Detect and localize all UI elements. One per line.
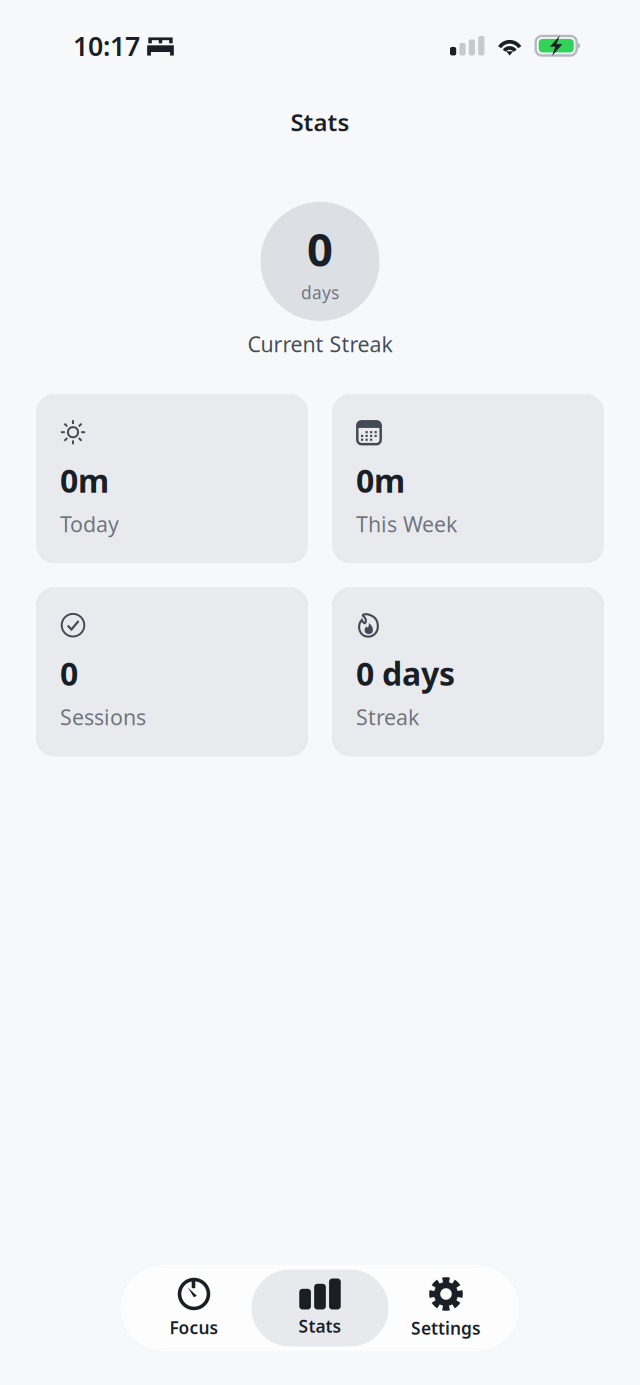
staticText: 0 bbox=[307, 219, 333, 279]
button[interactable]: 0m bbox=[332, 394, 604, 563]
staticText: 0m bbox=[60, 459, 109, 502]
button[interactable]: Focus bbox=[125, 1269, 262, 1346]
staticText: 10:17 bbox=[73, 28, 140, 63]
button[interactable]: 0 bbox=[36, 587, 308, 756]
staticText: Today bbox=[60, 510, 119, 538]
staticText: 0m bbox=[356, 459, 405, 502]
staticText: Sessions bbox=[60, 703, 146, 731]
staticText: Streak bbox=[356, 703, 419, 731]
staticText: Focus bbox=[169, 1316, 218, 1339]
staticText: Stats bbox=[298, 1314, 341, 1337]
staticText: Settings bbox=[411, 1316, 481, 1339]
button[interactable]: 0 days bbox=[332, 587, 604, 756]
staticText: This Week bbox=[356, 510, 457, 538]
staticText: Stats bbox=[290, 106, 349, 138]
staticText: Current Streak bbox=[247, 330, 392, 358]
staticText: days bbox=[301, 281, 339, 304]
button[interactable]: 0m bbox=[36, 394, 308, 563]
staticText: 0 days bbox=[356, 652, 455, 695]
button[interactable]: Settings bbox=[377, 1269, 514, 1346]
staticText: 0 bbox=[60, 652, 78, 695]
button[interactable]: Stats bbox=[251, 1269, 388, 1346]
